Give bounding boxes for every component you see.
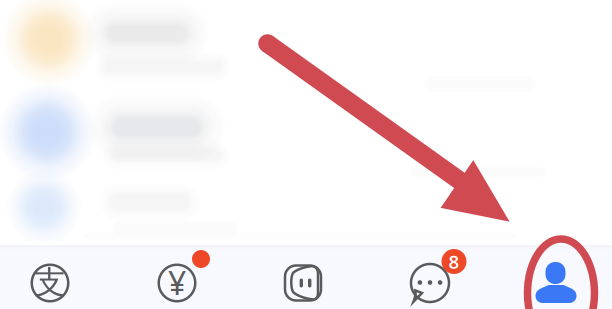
button[interactable]: Me	[496, 251, 612, 309]
button[interactable]: Services	[242, 251, 364, 309]
button[interactable]: Wealth	[116, 251, 238, 309]
button[interactable]: Home	[0, 251, 111, 309]
staticText: 支	[34, 263, 66, 302]
staticText: 8	[448, 249, 459, 274]
button[interactable]: Friends	[369, 251, 491, 309]
staticText: ¥	[168, 261, 186, 304]
